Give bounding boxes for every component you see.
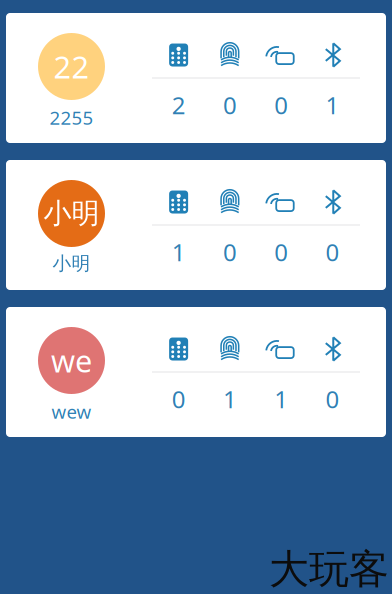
staticText: we	[51, 340, 92, 381]
staticText: 大玩客	[269, 545, 389, 594]
staticText: 1	[274, 383, 288, 415]
staticText: 0	[325, 236, 339, 268]
staticText: 0	[223, 89, 237, 121]
button[interactable]: 22	[6, 13, 386, 143]
staticText: 22	[53, 46, 89, 87]
staticText: 0	[223, 236, 237, 268]
staticText: 0	[172, 383, 186, 415]
staticText: 0	[325, 383, 339, 415]
staticText: 2	[172, 89, 186, 121]
button[interactable]: we	[6, 307, 386, 437]
staticText: 1	[223, 383, 237, 415]
staticText: wew	[51, 399, 91, 424]
staticText: 2255	[49, 105, 93, 130]
staticText: 小明	[52, 252, 90, 275]
staticText: 1	[325, 89, 339, 121]
staticText: 1	[172, 236, 186, 268]
staticText: 小明	[43, 196, 99, 231]
button[interactable]: 小明	[6, 160, 386, 290]
staticText: 0	[274, 236, 288, 268]
staticText: 0	[274, 89, 288, 121]
